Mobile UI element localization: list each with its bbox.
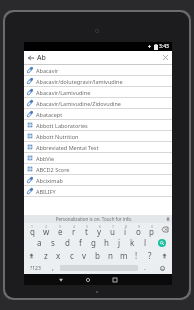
button[interactable]: Home — [78, 274, 98, 285]
staticText: f — [79, 237, 82, 248]
staticText: Abacavir/Lamivudine — [36, 89, 91, 96]
button[interactable]: , — [46, 262, 60, 274]
button[interactable]: 1 — [25, 223, 39, 236]
button[interactable]: 4 — [67, 223, 80, 236]
button[interactable]: l — [139, 236, 152, 249]
staticText: . — [144, 263, 146, 273]
button[interactable]: Abacavir/Lamivudine/Zidovudine — [24, 98, 172, 108]
button[interactable]: ? — [143, 249, 156, 262]
staticText: 6 — [99, 224, 101, 229]
staticText: Abciximab — [36, 177, 63, 184]
button[interactable]: g — [87, 236, 100, 249]
staticText: i — [124, 226, 127, 237]
button[interactable]: Abbreviated Mental Test — [24, 142, 172, 152]
staticText: z — [44, 250, 48, 261]
staticText: ?123 — [30, 265, 41, 272]
button[interactable]: Abciximab — [24, 175, 172, 185]
button[interactable]: Recent apps — [105, 274, 125, 285]
staticText: , — [52, 263, 54, 273]
button[interactable]: f — [74, 236, 87, 249]
staticText: s — [51, 237, 55, 248]
staticText: m — [120, 250, 128, 261]
staticText: y — [97, 226, 102, 237]
button[interactable]: Abacavir/Lamivudine — [24, 87, 172, 97]
staticText: ABILIFY — [36, 188, 56, 195]
button[interactable]: Back — [51, 274, 71, 285]
button[interactable]: ABILIFY — [24, 186, 172, 196]
staticText: o — [136, 226, 141, 237]
staticText: u — [110, 226, 115, 237]
staticText: Abacavir/Lamivudine/Zidovudine — [36, 100, 121, 107]
staticText: 3 — [59, 224, 61, 229]
button[interactable]: c — [65, 249, 78, 262]
button[interactable]: 2 — [39, 223, 53, 236]
staticText: 5 — [86, 224, 88, 229]
button[interactable]: ?123 — [24, 262, 46, 274]
staticText: w — [43, 226, 50, 237]
staticText: Abbott Nutrition — [36, 133, 79, 140]
button[interactable]: 8 — [119, 223, 132, 236]
staticText: 2 — [45, 224, 47, 229]
staticText: c — [70, 250, 74, 261]
button[interactable]: Backspace — [158, 223, 171, 236]
button[interactable]: ABCD2 Score — [24, 164, 172, 174]
staticText: 9 — [138, 224, 140, 229]
button[interactable]: Search — [152, 236, 172, 249]
staticText: 7 — [112, 224, 114, 229]
button[interactable]: s — [46, 236, 60, 249]
staticText: e — [58, 226, 63, 237]
button[interactable]: z — [39, 249, 52, 262]
staticText: v — [82, 250, 87, 261]
button[interactable]: 7 — [106, 223, 119, 236]
button[interactable]: m — [117, 249, 130, 262]
button[interactable]: ! — [130, 249, 143, 262]
staticText: a — [37, 237, 42, 248]
button[interactable]: Voice input — [164, 215, 172, 223]
button[interactable]: 6 — [93, 223, 106, 236]
staticText: t — [85, 226, 88, 237]
staticText: Personalization is on. Touch for info. — [24, 216, 164, 222]
button[interactable]: Emoji — [152, 262, 172, 274]
staticText: ABCD2 Score — [36, 166, 70, 173]
staticText: r — [72, 226, 76, 237]
staticText: 4 — [73, 224, 75, 229]
button[interactable]: b — [91, 249, 104, 262]
button[interactable]: d — [60, 236, 74, 249]
button[interactable]: Back — [24, 51, 37, 64]
button[interactable]: v — [78, 249, 91, 262]
button[interactable]: Abacavir — [24, 65, 172, 75]
button[interactable]: Abatacept — [24, 109, 172, 119]
button[interactable]: 5 — [80, 223, 93, 236]
button[interactable]: Abbott Nutrition — [24, 131, 172, 141]
button[interactable]: n — [104, 249, 117, 262]
button[interactable]: AbbVie — [24, 153, 172, 163]
button[interactable]: Shift — [156, 249, 172, 262]
button[interactable]: Shift — [24, 249, 39, 262]
staticText: Abatacept — [36, 111, 63, 118]
button[interactable]: 0 — [145, 223, 158, 236]
button[interactable]: 9 — [132, 223, 145, 236]
button[interactable]: x — [52, 249, 65, 262]
staticText: Abacavir — [36, 67, 59, 74]
staticText: l — [144, 237, 147, 248]
button[interactable]: k — [126, 236, 139, 249]
button[interactable]: 3 — [53, 223, 67, 236]
staticText: d — [65, 237, 70, 248]
staticText: g — [91, 237, 96, 248]
staticText: AbbVie — [36, 155, 55, 162]
staticText: 8 — [125, 224, 127, 229]
button[interactable]: j — [113, 236, 126, 249]
button[interactable]: Abbott Laboratories — [24, 120, 172, 130]
button[interactable]: h — [100, 236, 113, 249]
staticText: q — [30, 226, 35, 237]
staticText: h — [104, 237, 109, 248]
staticText: p — [149, 226, 154, 237]
staticText: Ab — [37, 53, 159, 63]
button[interactable]: Personalization is on. Touch for info. — [24, 215, 172, 223]
button[interactable]: . — [138, 262, 152, 274]
button[interactable]: a — [32, 236, 46, 249]
staticText: Abbreviated Mental Test — [36, 144, 99, 151]
button[interactable]: Abacavir/dolutegravir/lamivudine — [24, 76, 172, 86]
button[interactable]: Clear query — [159, 51, 172, 64]
